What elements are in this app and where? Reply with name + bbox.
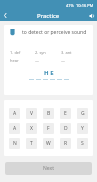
staticText: N bbox=[13, 140, 17, 147]
staticText: 2. syn bbox=[35, 50, 46, 55]
button[interactable]: A bbox=[9, 123, 20, 134]
staticText: — bbox=[61, 58, 65, 63]
staticText: Next bbox=[43, 165, 54, 172]
button[interactable]: E bbox=[60, 108, 71, 119]
staticText: E bbox=[64, 110, 67, 117]
staticText: V bbox=[30, 110, 34, 117]
button[interactable]: N bbox=[9, 138, 20, 149]
button[interactable]: Back bbox=[0, 10, 11, 21]
staticText: 10:16 PM bbox=[76, 3, 94, 8]
staticText: X bbox=[30, 125, 33, 132]
button[interactable]: T bbox=[26, 138, 37, 149]
staticText: 3. ant bbox=[61, 50, 72, 55]
button[interactable]: S bbox=[77, 138, 88, 149]
button[interactable]: Y bbox=[77, 123, 88, 134]
staticText: A bbox=[13, 125, 17, 132]
button[interactable]: F bbox=[43, 123, 54, 134]
staticText: to detect or perceive sound bbox=[22, 29, 87, 36]
staticText: R bbox=[64, 140, 68, 147]
staticText: G bbox=[81, 110, 85, 117]
staticText: hear bbox=[10, 58, 19, 63]
staticText: F bbox=[47, 125, 50, 132]
staticText: Practice bbox=[37, 12, 60, 20]
button[interactable]: Sound bbox=[86, 10, 97, 21]
staticText: W bbox=[46, 140, 51, 147]
staticText: H E bbox=[44, 69, 54, 77]
staticText: — bbox=[35, 58, 39, 63]
staticText: S bbox=[81, 140, 84, 147]
button[interactable]: V bbox=[26, 108, 37, 119]
staticText: B bbox=[47, 110, 51, 117]
button[interactable]: W bbox=[43, 138, 54, 149]
button[interactable]: X bbox=[26, 123, 37, 134]
staticText: D bbox=[64, 125, 68, 132]
button[interactable]: G bbox=[77, 108, 88, 119]
staticText: Y bbox=[81, 125, 84, 132]
button[interactable]: B bbox=[43, 108, 54, 119]
button[interactable]: R bbox=[60, 138, 71, 149]
staticText: T bbox=[30, 140, 33, 147]
button[interactable]: Next bbox=[5, 162, 92, 175]
staticText: 41% bbox=[66, 3, 74, 8]
staticText: 1. def bbox=[10, 50, 21, 55]
button[interactable]: A bbox=[9, 108, 20, 119]
button[interactable]: D bbox=[60, 123, 71, 134]
staticText: A bbox=[13, 110, 17, 117]
